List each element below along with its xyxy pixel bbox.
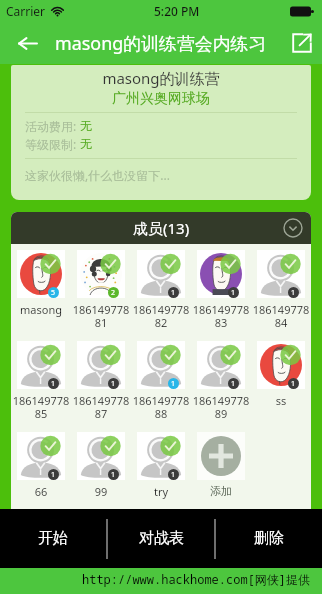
button[interactable]: 对战表	[108, 509, 214, 568]
staticText: 5:20 PM	[154, 3, 200, 19]
button[interactable]: 成员(13)	[11, 212, 311, 244]
button[interactable]: 1	[11, 335, 71, 421]
staticText: 99	[71, 484, 131, 499]
staticText: 1	[51, 379, 56, 389]
staticText: 1	[171, 288, 176, 298]
staticText: ss	[251, 393, 311, 408]
staticText: 1	[291, 379, 296, 389]
staticText: 1	[231, 379, 236, 389]
button[interactable]: Collapse	[283, 218, 303, 238]
button[interactable]: 1	[251, 244, 311, 330]
staticText: 无	[80, 136, 92, 151]
button[interactable]: 5	[11, 244, 71, 317]
staticText: 18614977887	[71, 393, 131, 421]
button[interactable]: 开始	[0, 509, 106, 568]
button[interactable]: 添加	[191, 426, 251, 498]
staticText: 2	[111, 288, 116, 298]
staticText: 1	[51, 470, 56, 480]
button[interactable]: 1	[251, 335, 311, 408]
staticText: 18614977885	[11, 393, 71, 421]
staticText: 18614977884	[251, 302, 311, 330]
staticText: 18614977888	[131, 393, 191, 421]
staticText: 开始	[38, 529, 68, 548]
staticText: 18614977881	[71, 302, 131, 330]
staticText: 对战表	[139, 529, 184, 548]
staticText: http://www.hackhome.com[网侠]提供	[82, 571, 311, 587]
button[interactable]: 1	[191, 244, 251, 330]
staticText: 5	[51, 288, 56, 298]
staticText: 这家伙很懒,什么也没留下...	[25, 167, 170, 183]
staticText: 1	[111, 379, 116, 389]
staticText: 18614977882	[131, 302, 191, 330]
staticText: masong的训练营	[11, 68, 311, 88]
button[interactable]: 1	[71, 426, 131, 499]
button[interactable]: 1	[71, 335, 131, 421]
staticText: 1	[291, 288, 296, 298]
staticText: 18614977889	[191, 393, 251, 421]
staticText: 66	[11, 484, 71, 499]
staticText: 无	[80, 118, 92, 133]
staticText: 广州兴奥网球场	[11, 90, 311, 108]
staticText: 1	[171, 470, 176, 480]
button[interactable]: 1	[131, 244, 191, 330]
staticText: 1	[231, 288, 236, 298]
staticText: masong	[11, 302, 71, 317]
button[interactable]: 1	[11, 426, 71, 499]
staticText: Carrier	[6, 3, 46, 19]
staticText: 活动费用:	[25, 118, 80, 134]
button[interactable]: Share	[282, 22, 322, 64]
staticText: 等级限制:	[25, 136, 80, 152]
staticText: masong的训练营会内练习	[55, 31, 267, 55]
staticText: 1	[111, 470, 116, 480]
button[interactable]: Back	[0, 22, 55, 64]
staticText: 成员(13)	[133, 218, 190, 238]
staticText: try	[131, 484, 191, 499]
button[interactable]: 1	[191, 335, 251, 421]
staticText: 18614977883	[191, 302, 251, 330]
staticText: 1	[171, 379, 176, 389]
button[interactable]: 1	[131, 426, 191, 499]
button[interactable]: 删除	[216, 509, 322, 568]
button[interactable]: 2	[71, 244, 131, 330]
button[interactable]: 1	[131, 335, 191, 421]
staticText: 添加	[191, 484, 251, 498]
staticText: 删除	[254, 529, 284, 548]
other: 添加	[201, 436, 241, 476]
